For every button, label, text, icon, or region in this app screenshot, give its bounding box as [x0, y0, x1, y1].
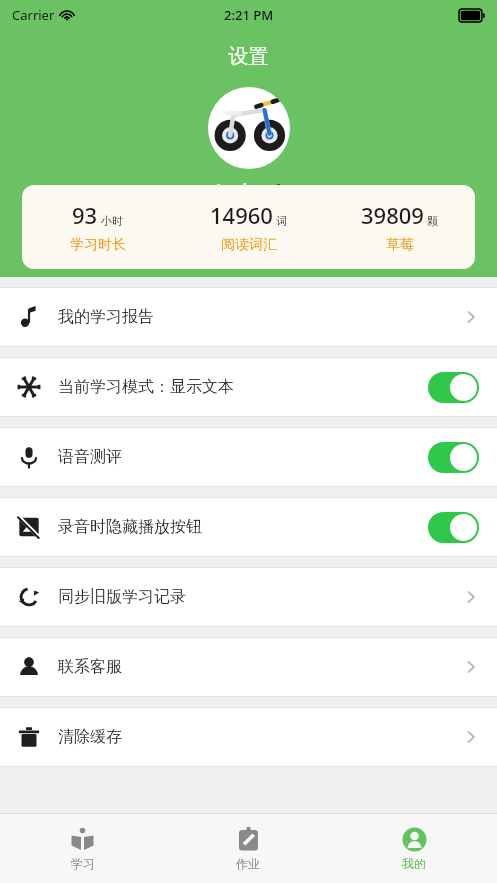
button[interactable]: Avatar: [208, 87, 290, 169]
staticText: 清除缓存: [58, 727, 463, 747]
staticText: 联系客服: [58, 657, 463, 677]
staticText: 2:21 PM: [224, 6, 274, 24]
staticText: 草莓: [386, 236, 414, 254]
staticText: 小时: [101, 214, 123, 228]
button[interactable]: 清除缓存: [0, 708, 497, 766]
staticText: 颗: [427, 214, 438, 228]
button[interactable]: Toggle 语音测评: [428, 442, 479, 473]
button[interactable]: 联系客服: [0, 638, 497, 696]
button[interactable]: 同步旧版学习记录: [0, 568, 497, 626]
staticText: Carrier: [12, 6, 55, 24]
staticText: 语音测评: [58, 447, 428, 467]
button[interactable]: 我的: [331, 814, 497, 883]
staticText: 设置: [0, 44, 497, 69]
staticText: 39809: [361, 200, 424, 230]
button[interactable]: 学习: [0, 814, 165, 883]
button[interactable]: Toggle 当前学习模式：显示文本: [428, 372, 479, 403]
staticText: 当前学习模式：显示文本: [58, 377, 428, 397]
staticText: 14960: [210, 200, 273, 230]
staticText: 学习: [71, 856, 95, 871]
staticText: 93: [72, 200, 98, 230]
button[interactable]: 录音时隐藏播放按钮: [0, 498, 497, 556]
button[interactable]: Edit name: [261, 181, 281, 201]
button[interactable]: 语音测评: [0, 428, 497, 486]
button[interactable]: 93: [22, 185, 475, 269]
staticText: 我的学习报告: [58, 307, 463, 327]
button[interactable]: 我的学习报告: [0, 288, 497, 346]
button[interactable]: 作业: [165, 814, 331, 883]
staticText: 词: [276, 214, 287, 228]
staticText: 我的: [402, 856, 426, 871]
staticText: 学习时长: [70, 236, 126, 254]
button[interactable]: Toggle 录音时隐藏播放按钮: [428, 512, 479, 543]
staticText: 同步旧版学习记录: [58, 587, 463, 607]
staticText: 作业: [236, 856, 260, 871]
staticText: Jack: [216, 177, 253, 204]
staticText: 阅读词汇: [221, 236, 277, 254]
staticText: 录音时隐藏播放按钮: [58, 517, 428, 537]
button[interactable]: 当前学习模式：显示文本: [0, 358, 497, 416]
